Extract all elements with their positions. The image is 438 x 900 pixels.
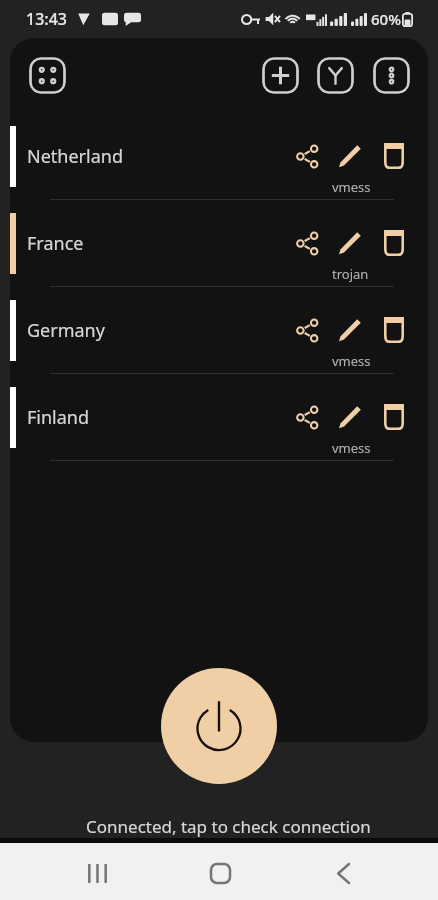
- button[interactable]: Delete: [376, 399, 411, 434]
- button[interactable]: Edit: [333, 400, 367, 434]
- button[interactable]: Menu: [29, 57, 66, 94]
- button[interactable]: Edit: [333, 226, 367, 260]
- staticText: Netherland: [27, 144, 123, 169]
- button[interactable]: Filter: [317, 57, 354, 94]
- button[interactable]: Edit: [333, 313, 367, 347]
- button[interactable]: Delete: [376, 138, 411, 173]
- staticText: France: [27, 231, 84, 256]
- button[interactable]: Share: [290, 313, 324, 347]
- staticText: Finland: [27, 405, 90, 430]
- button[interactable]: Share: [290, 226, 324, 260]
- button[interactable]: Share: [290, 400, 324, 434]
- button[interactable]: Connect: [161, 668, 277, 784]
- staticText: vmess: [332, 352, 371, 370]
- button[interactable]: Netherland: [10, 113, 428, 200]
- button[interactable]: More options: [373, 57, 410, 94]
- button[interactable]: Edit: [333, 139, 367, 173]
- button[interactable]: Share: [290, 139, 324, 173]
- button[interactable]: Germany: [10, 287, 428, 374]
- staticText: Germany: [27, 318, 105, 343]
- button[interactable]: Recents: [66, 845, 128, 900]
- button[interactable]: Back: [312, 845, 374, 900]
- staticText: vmess: [332, 439, 371, 457]
- button[interactable]: France: [10, 200, 428, 287]
- button[interactable]: Home: [189, 845, 251, 900]
- button[interactable]: Finland: [10, 374, 428, 461]
- staticText: 13:43: [26, 8, 67, 30]
- staticText: vmess: [332, 178, 371, 196]
- button[interactable]: Delete: [376, 312, 411, 347]
- staticText: trojan: [332, 265, 369, 283]
- button[interactable]: Delete: [376, 225, 411, 260]
- staticText: 60%: [371, 9, 401, 29]
- button[interactable]: Add server: [262, 57, 299, 94]
- button[interactable]: Connected, tap to check connection: [86, 815, 371, 838]
